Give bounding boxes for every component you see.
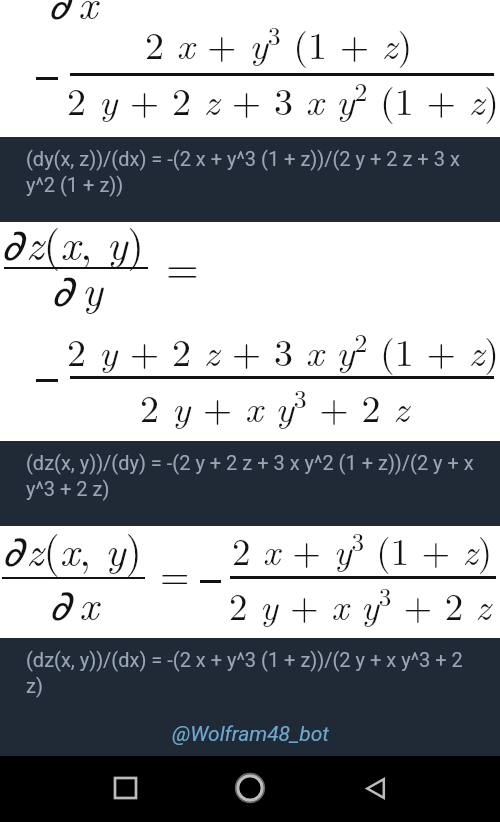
staticText: ∂ x xyxy=(48,0,98,32)
staticText: 2 y + 2 z + 3 x y2 (1 + z) xyxy=(67,72,500,126)
staticText: = xyxy=(166,236,199,296)
staticText: (dy(x, z))/(dx) = -(2 x + y^3 (1 + z))/(… xyxy=(26,147,476,197)
staticText: ∂ x xyxy=(49,573,99,633)
button[interactable]: Back xyxy=(351,764,399,812)
staticText: 2 y + 2 z + 3 x y2 (1 + z) xyxy=(67,323,500,377)
staticText: 2 x + y3 (1 + z) xyxy=(145,16,413,70)
button[interactable]: Home xyxy=(226,764,274,812)
staticText: = xyxy=(160,546,190,600)
staticText: @Wolfram48_bot xyxy=(172,722,329,747)
staticText: ∂ z(x, y) xyxy=(1,212,145,273)
staticText: 2 x + y3 (1 + z) xyxy=(232,523,493,576)
staticText: 2 y + x y3 + 2 z xyxy=(229,578,491,631)
staticText: (dz(x, y))/(dy) = -(2 y + 2 z + 3 x y^2 … xyxy=(26,451,476,501)
staticText: (dz(x, y))/(dx) = -(2 x + y^3 (1 + z))/(… xyxy=(26,648,476,698)
button[interactable]: Recent apps xyxy=(101,764,149,812)
staticText: 2 y + x y3 + 2 z xyxy=(140,379,409,433)
staticText: ∂ y xyxy=(51,258,103,319)
button[interactable]: @Wolfram48_bot xyxy=(0,722,500,747)
staticText: ∂ z(x, y) xyxy=(2,519,142,579)
